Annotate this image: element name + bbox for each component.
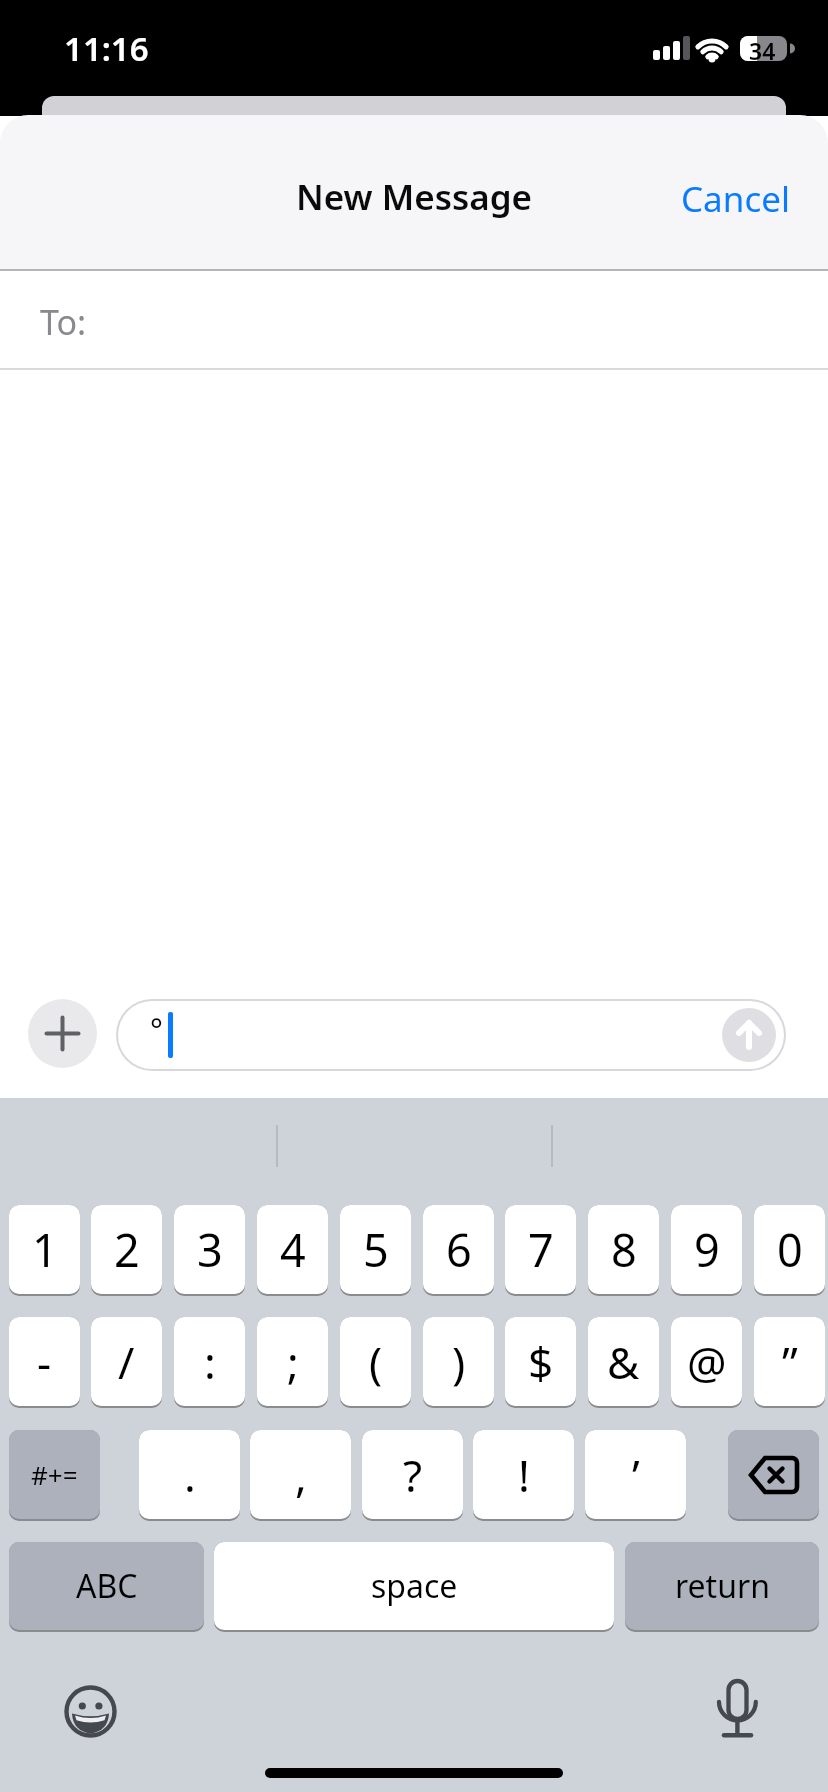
staticText: , (295, 1445, 307, 1505)
staticText: . (184, 1445, 196, 1505)
staticText: New Message (296, 173, 533, 221)
staticText: space (371, 1564, 458, 1608)
button[interactable]: ; (257, 1317, 328, 1408)
button[interactable] (722, 1008, 776, 1062)
staticText: ? (403, 1445, 423, 1505)
button[interactable]: ) (423, 1317, 494, 1408)
button[interactable]: space (214, 1542, 614, 1632)
staticText: 4 (280, 1219, 306, 1280)
button[interactable]: ” (754, 1317, 825, 1408)
button[interactable]: ! (473, 1430, 574, 1521)
staticText: ’ (632, 1445, 640, 1505)
staticText: ; (287, 1332, 299, 1392)
button[interactable]: 3 (174, 1205, 245, 1296)
button[interactable]: & (588, 1317, 659, 1408)
staticText: & (607, 1332, 640, 1392)
staticText: To: (40, 299, 87, 345)
button[interactable]: #+= (9, 1430, 100, 1521)
button[interactable]: ABC (9, 1542, 204, 1632)
staticText: 11:16 (64, 26, 149, 71)
button[interactable]: , (250, 1430, 351, 1521)
button[interactable]: ? (362, 1430, 463, 1521)
button[interactable] (728, 1430, 819, 1521)
button[interactable]: return (625, 1542, 819, 1632)
button[interactable]: 1 (9, 1205, 80, 1296)
button[interactable]: 7 (505, 1205, 576, 1296)
button[interactable]: . (139, 1430, 240, 1521)
button[interactable]: 9 (671, 1205, 742, 1296)
staticText: : (204, 1332, 216, 1392)
button[interactable]: : (174, 1317, 245, 1408)
button[interactable]: ° (116, 999, 786, 1071)
staticText: 9 (694, 1219, 720, 1280)
staticText: ” (782, 1332, 798, 1392)
staticText: #+= (31, 1457, 78, 1492)
button[interactable]: 2 (91, 1205, 162, 1296)
button[interactable]: @ (671, 1317, 742, 1408)
button[interactable]: Cancel (681, 175, 790, 219)
button[interactable] (62, 1684, 118, 1740)
staticText: $ (528, 1332, 554, 1392)
button[interactable]: 5 (340, 1205, 411, 1296)
staticText: @ (687, 1332, 727, 1392)
staticText: 7 (528, 1219, 554, 1280)
staticText: / (118, 1332, 135, 1392)
button[interactable]: ’ (585, 1430, 686, 1521)
staticText: 2 (114, 1219, 140, 1280)
button[interactable]: / (91, 1317, 162, 1408)
button[interactable]: $ (505, 1317, 576, 1408)
staticText: 0 (777, 1219, 803, 1280)
button[interactable]: 0 (754, 1205, 825, 1296)
staticText: ( (369, 1332, 383, 1392)
staticText: ° (150, 1009, 163, 1050)
staticText: 1 (32, 1219, 58, 1280)
button[interactable]: 8 (588, 1205, 659, 1296)
staticText: - (37, 1332, 52, 1392)
staticText: 5 (363, 1219, 389, 1280)
button[interactable] (28, 999, 97, 1068)
staticText: 34 (749, 35, 776, 66)
button[interactable]: ( (340, 1317, 411, 1408)
button[interactable]: 4 (257, 1205, 328, 1296)
staticText: 8 (611, 1219, 637, 1280)
staticText: ) (452, 1332, 466, 1392)
staticText: 3 (197, 1219, 223, 1280)
staticText: ABC (76, 1564, 138, 1608)
button[interactable]: 6 (423, 1205, 494, 1296)
staticText: 6 (446, 1219, 472, 1280)
button[interactable]: To: (0, 271, 828, 368)
staticText: return (675, 1564, 770, 1608)
button[interactable] (707, 1676, 769, 1738)
button[interactable]: - (9, 1317, 80, 1408)
staticText: ! (518, 1445, 530, 1505)
staticText: Cancel (681, 175, 790, 219)
